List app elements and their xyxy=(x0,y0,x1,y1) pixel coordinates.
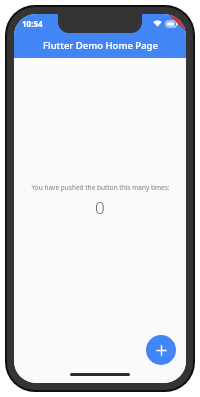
staticText: 0 xyxy=(95,196,105,219)
button[interactable]: Increment xyxy=(146,335,176,365)
staticText: You have pushed the button this many tim… xyxy=(31,183,170,192)
staticText: Flutter Demo Home Page xyxy=(43,39,158,52)
staticText: 10:54 xyxy=(22,18,43,29)
